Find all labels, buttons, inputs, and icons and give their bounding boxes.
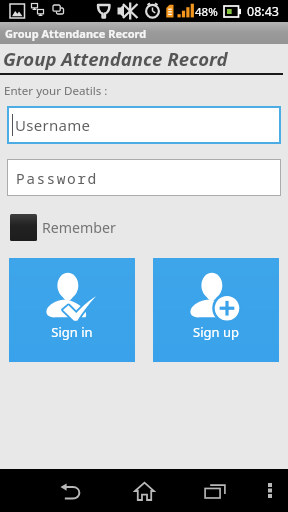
staticText: Password <box>16 168 98 188</box>
staticText: Enter your Deatils : <box>4 83 108 99</box>
staticText: 48% <box>195 4 218 20</box>
staticText: Username <box>15 115 91 135</box>
staticText: Remember <box>42 218 116 237</box>
button[interactable]: Recent apps <box>195 469 235 512</box>
button[interactable]: Back <box>51 469 91 512</box>
button[interactable]: Sign up <box>153 258 279 362</box>
staticText: Sign up <box>193 323 239 341</box>
button[interactable]: Username <box>7 106 281 144</box>
button[interactable]: Home <box>124 469 164 512</box>
staticText: Group Attendance Record <box>3 46 228 71</box>
staticText: 08:43 <box>247 3 279 20</box>
button[interactable]: Sign in <box>9 258 135 362</box>
staticText: Sign in <box>51 323 93 341</box>
staticText: Group Attendance Record <box>5 26 147 41</box>
button[interactable]: Password <box>7 159 281 196</box>
button[interactable]: Remember <box>10 214 116 241</box>
button[interactable]: More options <box>255 469 285 512</box>
